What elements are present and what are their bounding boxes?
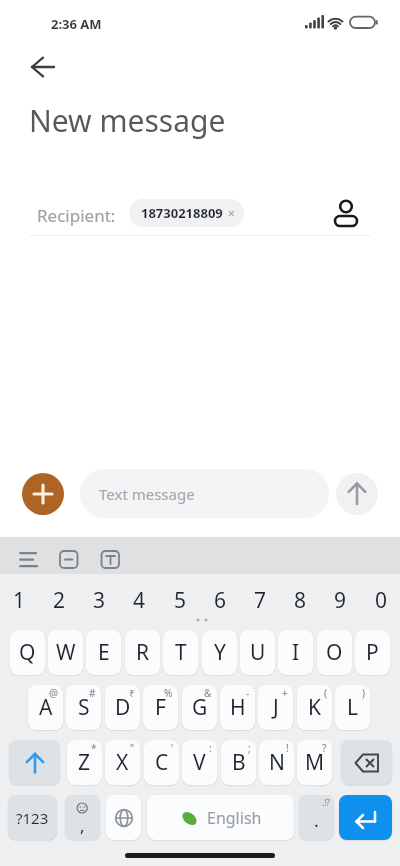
staticText: * xyxy=(91,741,97,755)
button[interactable]: C xyxy=(144,740,179,785)
staticText: 7 xyxy=(254,586,267,614)
button[interactable]: English xyxy=(147,795,294,840)
staticText: ' xyxy=(171,741,174,755)
staticText: ) xyxy=(362,686,365,700)
staticText: + xyxy=(282,686,288,700)
button[interactable]: 7 xyxy=(240,586,280,614)
button[interactable]: . xyxy=(299,795,334,840)
staticText: A xyxy=(39,693,53,722)
button[interactable]: 9 xyxy=(320,586,360,614)
button[interactable]: 1 xyxy=(0,586,39,614)
button[interactable] xyxy=(106,795,141,840)
staticText: 4 xyxy=(133,586,146,614)
staticText: H xyxy=(230,693,246,722)
staticText: Recipient: xyxy=(37,204,116,227)
button[interactable] xyxy=(24,49,60,85)
button[interactable]: I xyxy=(278,630,313,675)
button[interactable]: X xyxy=(105,740,140,785)
button[interactable]: P xyxy=(355,630,390,675)
button[interactable]: Y xyxy=(202,630,237,675)
button[interactable]: D xyxy=(105,685,140,730)
button[interactable]: R xyxy=(125,630,160,675)
button[interactable]: T xyxy=(163,630,198,675)
button[interactable] xyxy=(9,740,60,785)
staticText: 9 xyxy=(334,586,347,614)
staticText: New message xyxy=(29,100,226,141)
button[interactable]: U xyxy=(240,630,275,675)
staticText: 8 xyxy=(294,586,307,614)
staticText: I xyxy=(292,638,300,667)
button[interactable]: V xyxy=(182,740,217,785)
button[interactable]: 4 xyxy=(119,586,159,614)
staticText: 3 xyxy=(93,586,106,614)
button[interactable]: J xyxy=(258,685,293,730)
staticText: 2 xyxy=(53,586,66,614)
button[interactable]: 2 xyxy=(39,586,79,614)
button[interactable]: 18730218809 xyxy=(129,199,244,227)
staticText: 2:36 AM xyxy=(51,15,102,33)
staticText: N xyxy=(269,748,285,777)
staticText: F xyxy=(155,693,166,722)
staticText: Y xyxy=(214,638,226,667)
button[interactable]: Text message xyxy=(80,469,329,518)
button[interactable]: Z xyxy=(67,740,102,785)
button[interactable]: M xyxy=(297,740,332,785)
staticText: Q xyxy=(19,638,36,667)
staticText: . xyxy=(314,808,319,833)
staticText: V xyxy=(193,748,206,777)
staticText: J xyxy=(273,693,279,722)
button[interactable] xyxy=(339,795,392,840)
staticText: M xyxy=(305,748,325,777)
staticText: " xyxy=(130,741,135,755)
staticText: 5 xyxy=(174,586,187,614)
staticText: English xyxy=(207,807,262,829)
button[interactable]: 8 xyxy=(280,586,320,614)
staticText: X xyxy=(116,748,129,777)
staticText: ( xyxy=(324,686,327,700)
button[interactable]: 5 xyxy=(160,586,200,614)
button[interactable] xyxy=(341,740,392,785)
button[interactable]: 3 xyxy=(79,586,119,614)
button[interactable] xyxy=(330,195,364,229)
staticText: ; xyxy=(248,741,251,755)
button[interactable]: G xyxy=(182,685,217,730)
button[interactable]: N xyxy=(259,740,294,785)
staticText: K xyxy=(308,693,321,722)
button[interactable]: L xyxy=(335,685,370,730)
button[interactable]: S xyxy=(66,685,101,730)
staticText: .!? xyxy=(322,797,330,808)
button[interactable]: B xyxy=(221,740,256,785)
button[interactable] xyxy=(22,473,64,515)
staticText: U xyxy=(250,638,266,667)
button[interactable]: H xyxy=(220,685,255,730)
staticText: R xyxy=(136,638,150,667)
staticText: B xyxy=(232,748,246,777)
staticText: & xyxy=(204,686,212,700)
button[interactable]: F xyxy=(143,685,178,730)
staticText: @ xyxy=(49,686,58,700)
staticText: ?123 xyxy=(16,808,49,828)
staticText: C xyxy=(155,748,169,777)
staticText: × xyxy=(228,205,235,221)
staticText: % xyxy=(164,686,173,700)
staticText: ! xyxy=(286,741,289,755)
staticText: E xyxy=(98,638,110,667)
button[interactable]: K xyxy=(297,685,332,730)
button[interactable]: Q xyxy=(10,630,45,675)
staticText: : xyxy=(209,741,212,755)
staticText: # xyxy=(89,686,96,700)
staticText: ₹ xyxy=(129,686,135,700)
staticText: S xyxy=(78,693,90,722)
button[interactable]: O xyxy=(317,630,352,675)
button[interactable]: W xyxy=(48,630,83,675)
button[interactable]: A xyxy=(28,685,63,730)
button[interactable]: , xyxy=(65,795,100,840)
staticText: , xyxy=(80,814,85,837)
button[interactable]: 6 xyxy=(200,586,240,614)
button[interactable]: ?123 xyxy=(8,795,57,840)
staticText: D xyxy=(115,693,131,722)
button[interactable]: 0 xyxy=(361,586,400,614)
button[interactable]: E xyxy=(86,630,121,675)
button[interactable] xyxy=(336,473,378,515)
staticText: P xyxy=(366,638,379,667)
